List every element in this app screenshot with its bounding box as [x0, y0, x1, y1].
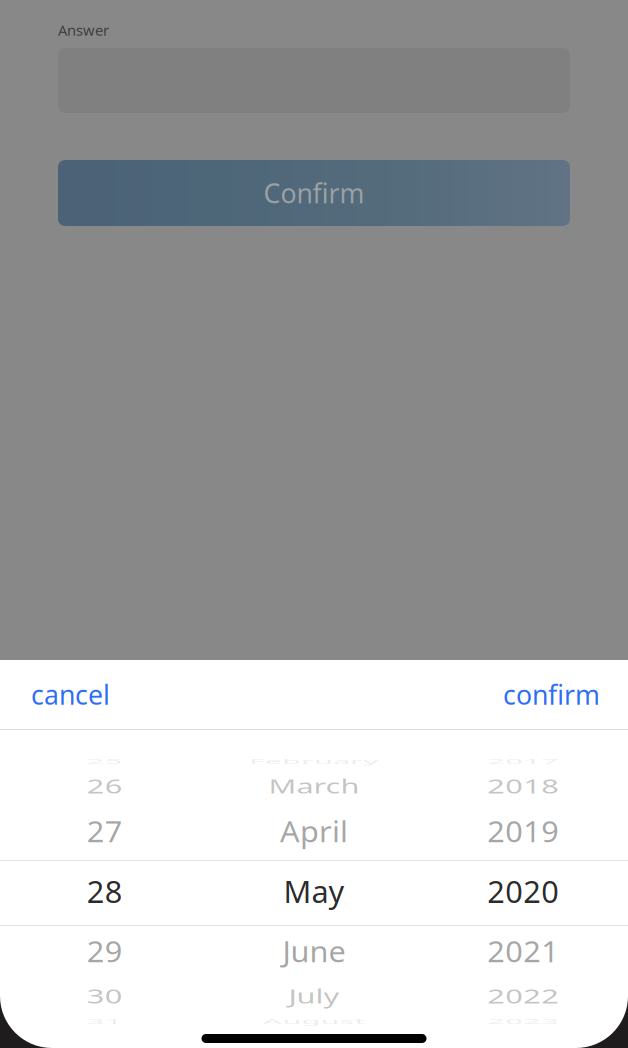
staticText: 31	[87, 1001, 123, 1041]
button[interactable]: 2020	[419, 858, 628, 923]
staticText: June	[282, 931, 345, 971]
staticText: 26	[87, 766, 123, 806]
staticText: May	[283, 871, 344, 911]
staticText: 2018	[487, 766, 559, 806]
staticText: 25	[87, 741, 123, 781]
staticText: 2017	[487, 741, 559, 781]
staticText: confirm	[503, 677, 600, 712]
staticText: March	[268, 766, 359, 806]
staticText: 29	[87, 931, 123, 971]
staticText: 2023	[487, 1001, 559, 1041]
staticText: Confirm	[263, 175, 364, 211]
button[interactable]: cancel	[0, 657, 134, 732]
button[interactable]: May	[209, 858, 419, 923]
staticText: 2022	[487, 976, 559, 1016]
staticText: 2019	[487, 811, 559, 851]
button[interactable]: 28	[0, 858, 209, 923]
staticText: 30	[87, 976, 123, 1016]
button[interactable]: Confirm	[58, 160, 570, 226]
staticText: 2021	[487, 931, 559, 971]
button[interactable]: confirm	[479, 657, 628, 732]
staticText: cancel	[31, 677, 110, 712]
staticText: Answer	[58, 20, 109, 40]
staticText: August	[262, 1001, 365, 1041]
staticText: 2020	[487, 871, 559, 911]
staticText: July	[288, 976, 339, 1016]
staticText: 28	[87, 871, 123, 911]
staticText: 27	[87, 811, 123, 851]
staticText: February	[249, 741, 379, 781]
staticText: April	[280, 811, 348, 851]
